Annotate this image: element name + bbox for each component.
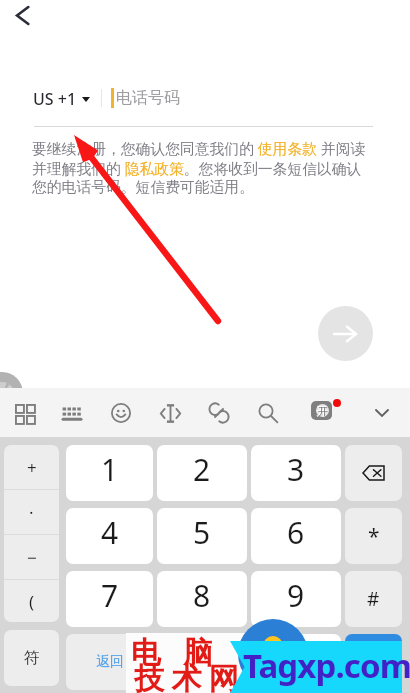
- button[interactable]: Clipboard: [201, 395, 237, 431]
- button[interactable]: Emoji: [103, 395, 139, 431]
- button[interactable]: Hide keyboard: [364, 395, 400, 431]
- button[interactable]: 5: [157, 508, 247, 564]
- button[interactable]: +: [4, 445, 59, 489]
- button[interactable]: 7: [66, 571, 153, 627]
- staticText: 5: [193, 512, 211, 553]
- button[interactable]: 2: [157, 445, 247, 501]
- button[interactable]: 4: [66, 508, 153, 564]
- button[interactable]: Input language: [302, 395, 338, 431]
- button[interactable]: Keyboard layout: [54, 395, 90, 431]
- staticText: 电 脑 技术网: [131, 631, 242, 693]
- button[interactable]: 9: [251, 571, 341, 627]
- staticText: 要继续注册，您确认您同意我们的 使用条款 并阅读: [32, 138, 366, 158]
- button[interactable]: ·: [4, 490, 59, 534]
- staticText: −: [27, 546, 37, 569]
- button[interactable]: Search: [250, 395, 286, 431]
- staticText: 返回: [96, 653, 124, 671]
- staticText: (: [29, 590, 35, 613]
- staticText: 2: [193, 449, 211, 490]
- button[interactable]: *: [345, 508, 402, 564]
- button[interactable]: Apps: [6, 395, 42, 431]
- button[interactable]: Back: [1, 0, 43, 36]
- staticText: 4: [101, 512, 119, 553]
- button[interactable]: [345, 634, 402, 690]
- staticText: 符: [24, 648, 40, 668]
- staticText: 6: [287, 512, 305, 553]
- button[interactable]: .: [251, 634, 341, 690]
- button[interactable]: −: [4, 535, 59, 579]
- staticText: ·: [29, 501, 34, 524]
- staticText: 并理解我们的 隐私政策。您将收到一条短信以确认: [32, 158, 362, 178]
- staticText: +: [27, 456, 37, 479]
- staticText: US +1: [33, 88, 77, 110]
- staticText: 电话号码: [116, 88, 180, 108]
- button[interactable]: (: [4, 580, 59, 622]
- staticText: 您的电话号码。短信费可能适用。: [32, 178, 254, 197]
- staticText: 开: [318, 405, 328, 418]
- button[interactable]: 0: [157, 634, 247, 690]
- staticText: 1: [101, 449, 119, 490]
- staticText: 8: [193, 575, 211, 616]
- button[interactable]: 8: [157, 571, 247, 627]
- button[interactable]: 返回: [66, 634, 153, 690]
- button[interactable]: US +1: [33, 88, 90, 110]
- button[interactable]: [345, 445, 402, 501]
- staticText: 0: [193, 638, 211, 679]
- staticText: 7: [101, 575, 119, 616]
- button[interactable]: 3: [251, 445, 341, 501]
- button[interactable]: 符: [4, 630, 59, 686]
- staticText: 开: [316, 403, 328, 418]
- staticText: 9: [287, 575, 305, 616]
- staticText: Tagxp.com: [243, 643, 410, 688]
- staticText: #: [367, 586, 380, 612]
- button[interactable]: 6: [251, 508, 341, 564]
- button[interactable]: Assistant: [0, 372, 23, 414]
- button[interactable]: Text cursor: [152, 395, 188, 431]
- staticText: *: [368, 522, 380, 551]
- staticText: 3: [287, 449, 305, 490]
- staticText: .: [292, 638, 301, 679]
- button[interactable]: #: [345, 571, 402, 627]
- button[interactable]: 1: [66, 445, 153, 501]
- button[interactable]: Continue: [318, 306, 373, 361]
